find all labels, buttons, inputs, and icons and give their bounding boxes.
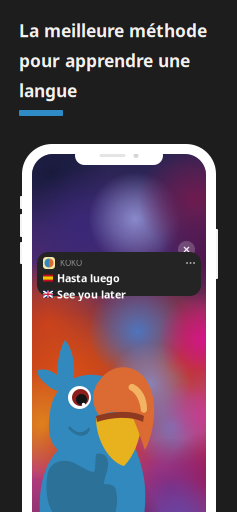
staticText: pour apprendre une: [19, 49, 190, 72]
staticText: KOKO: [60, 258, 82, 268]
button[interactable]: KOKO: [37, 252, 201, 296]
staticText: Hasta luego: [57, 271, 120, 285]
staticText: La meilleure méthode: [19, 19, 207, 42]
staticText: See you later: [57, 287, 126, 301]
button[interactable]: Close: [178, 241, 195, 258]
staticText: langue: [19, 79, 77, 102]
